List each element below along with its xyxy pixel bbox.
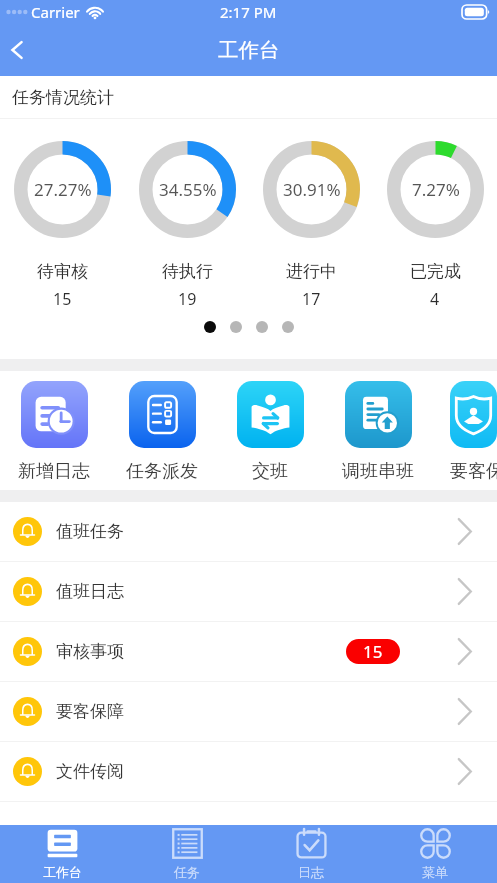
staticText: 已完成: [410, 261, 461, 282]
button[interactable]: 任务派发: [126, 371, 198, 483]
staticText: 27.27%: [34, 178, 92, 201]
staticText: 审核事项: [56, 641, 124, 662]
staticText: 值班任务: [56, 521, 124, 542]
staticText: 日志: [298, 864, 324, 880]
button[interactable]: Back: [0, 24, 34, 76]
button[interactable]: 值班日志: [0, 562, 497, 621]
button[interactable]: 工作台: [0, 825, 125, 883]
staticText: 任务: [174, 864, 200, 880]
button[interactable]: 新增日志: [18, 371, 90, 483]
staticText: 交班: [252, 460, 288, 483]
button[interactable]: 值班任务: [0, 502, 497, 561]
staticText: Carrier: [31, 2, 80, 22]
staticText: 新增日志: [18, 460, 90, 483]
staticText: 文件传阅: [56, 761, 124, 782]
staticText: 2:17 PM: [220, 2, 277, 22]
staticText: 进行中: [286, 261, 337, 282]
staticText: 工作台: [43, 864, 82, 880]
button[interactable]: 审核事项: [0, 622, 497, 681]
staticText: 值班日志: [56, 581, 124, 602]
button[interactable]: 要客保障: [0, 682, 497, 741]
staticText: 15: [363, 640, 383, 663]
staticText: 17: [302, 288, 321, 310]
button[interactable]: 菜单: [373, 825, 497, 883]
staticText: 34.55%: [159, 178, 217, 201]
staticText: 任务派发: [126, 460, 198, 483]
staticText: 4: [430, 288, 440, 310]
button[interactable]: 交班: [234, 371, 306, 483]
staticText: 调班串班: [342, 460, 414, 483]
button[interactable]: 调班串班: [342, 371, 414, 483]
staticText: 7.27%: [412, 178, 460, 201]
staticText: 要客保障: [450, 460, 497, 483]
button[interactable]: 文件传阅: [0, 742, 497, 801]
button[interactable]: 任务: [125, 825, 249, 883]
staticText: 待执行: [162, 261, 213, 282]
staticText: 30.91%: [283, 178, 341, 201]
staticText: 菜单: [422, 864, 448, 880]
staticText: 19: [178, 288, 197, 310]
button[interactable]: 日志: [249, 825, 373, 883]
staticText: 工作台: [218, 37, 280, 63]
button[interactable]: 要客保障: [450, 371, 497, 483]
staticText: 要客保障: [56, 701, 124, 722]
staticText: 15: [53, 288, 72, 310]
staticText: 任务情况统计: [12, 87, 114, 108]
staticText: 待审核: [37, 261, 88, 282]
